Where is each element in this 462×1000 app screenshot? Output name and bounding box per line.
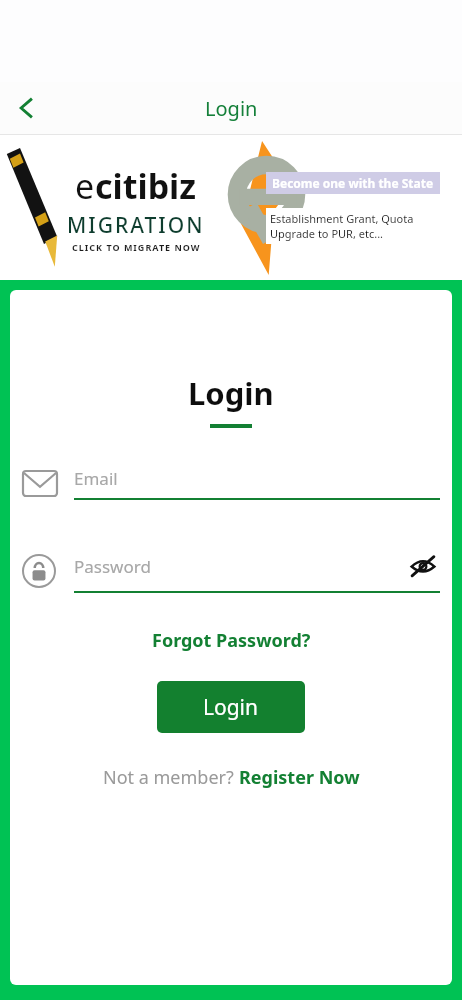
- button[interactable]: Back: [4, 86, 48, 130]
- staticText: Not a member?: [103, 765, 239, 790]
- button[interactable]: Password: [22, 548, 440, 594]
- staticText: Establishment Grant, Quota Upgrade to PU…: [270, 211, 458, 241]
- button[interactable]: Not a member?: [103, 765, 360, 790]
- staticText: Forgot Password?: [152, 628, 311, 653]
- staticText: Login: [203, 693, 259, 722]
- staticText: Password: [74, 555, 406, 578]
- button[interactable]: Email: [22, 460, 440, 506]
- staticText: Email: [74, 467, 118, 490]
- button[interactable]: Login: [157, 681, 305, 733]
- staticText: Login: [188, 372, 274, 414]
- button[interactable]: Show password: [406, 549, 440, 583]
- staticText: MIGRATION: [67, 211, 205, 240]
- button[interactable]: Become one with the State: [222, 135, 462, 280]
- staticText: Register Now: [239, 765, 360, 790]
- button[interactable]: e: [0, 135, 222, 280]
- staticText: e: [75, 163, 95, 209]
- button[interactable]: Forgot Password?: [144, 624, 319, 657]
- staticText: Login: [205, 95, 258, 122]
- staticText: CLICK TO MIGRATE NOW: [72, 241, 201, 253]
- staticText: citibiz: [95, 163, 197, 209]
- staticText: Become one with the State: [272, 175, 434, 191]
